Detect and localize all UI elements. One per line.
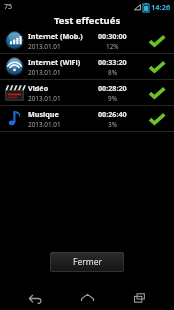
other: WiFi internet [5, 57, 24, 76]
other: Music [5, 109, 24, 128]
staticText: Fermer [73, 256, 102, 268]
staticText: 00:26:40 [98, 109, 127, 119]
staticText: 12% [106, 42, 119, 51]
button[interactable]: Recents [122, 286, 156, 310]
staticText: 14:26 [151, 2, 171, 12]
staticText: 2013.01.01 [28, 68, 61, 77]
staticText: Internet (WiFi) [28, 57, 81, 67]
staticText: 9% [108, 94, 117, 103]
button[interactable]: Back [18, 286, 52, 310]
button[interactable]: Video [0, 80, 174, 105]
staticText: Musique [28, 109, 59, 119]
other: Video [5, 83, 24, 102]
staticText: 2013.01.01 [28, 94, 61, 103]
other: Mobile internet [5, 31, 24, 50]
staticText: 2013.01.01 [28, 120, 61, 129]
button[interactable]: Music [0, 106, 174, 131]
staticText: Internet (Mob.) [28, 31, 83, 41]
button[interactable]: Mobile internet [0, 28, 174, 53]
staticText: 00:30:00 [98, 31, 127, 41]
staticText: Test effectués [54, 14, 121, 27]
staticText: 3% [108, 120, 117, 129]
staticText: 00:28:20 [98, 83, 127, 93]
button[interactable]: Fermer [50, 252, 124, 272]
staticText: 00:33:20 [98, 57, 127, 67]
staticText: 8% [108, 68, 117, 77]
staticText: 2013.01.01 [28, 42, 61, 51]
button[interactable]: WiFi internet [0, 54, 174, 79]
button[interactable]: Home [70, 286, 104, 310]
staticText: Vidéo [28, 83, 49, 93]
staticText: 75 [4, 2, 13, 12]
